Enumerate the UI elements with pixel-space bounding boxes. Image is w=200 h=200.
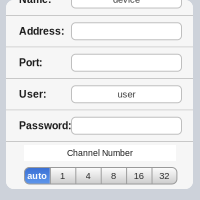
staticText: user — [117, 89, 135, 99]
staticText: device — [113, 0, 140, 5]
staticText: Address: — [19, 25, 64, 37]
staticText: auto — [27, 171, 47, 181]
button[interactable]: auto — [24, 167, 50, 184]
button[interactable] — [71, 117, 181, 134]
button[interactable]: device — [71, 0, 181, 8]
staticText: Channel Number — [67, 148, 133, 158]
button[interactable] — [71, 23, 181, 40]
button[interactable]: 32 — [151, 167, 177, 184]
button[interactable]: user — [71, 86, 181, 103]
staticText: 1 — [60, 170, 65, 181]
staticText: Password: — [19, 120, 71, 131]
staticText: 16 — [134, 170, 144, 181]
staticText: User: — [19, 88, 46, 100]
staticText: Port: — [19, 57, 42, 68]
staticText: 4 — [85, 170, 90, 181]
staticText: 8 — [111, 170, 116, 181]
button[interactable]: 1 — [50, 167, 75, 184]
button[interactable]: 4 — [75, 167, 101, 184]
button[interactable]: 8 — [101, 167, 126, 184]
staticText: 32 — [159, 170, 169, 181]
button[interactable]: 16 — [126, 167, 151, 184]
button[interactable] — [71, 54, 181, 71]
staticText: Name: — [19, 0, 51, 5]
